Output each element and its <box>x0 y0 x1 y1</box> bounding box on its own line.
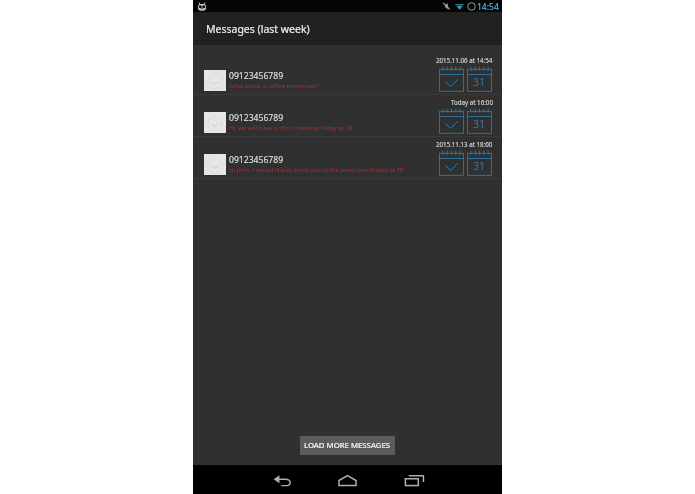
button[interactable]: Mark as done <box>439 106 464 134</box>
button[interactable]: Open calendar <box>467 64 492 92</box>
staticText: 2015.11.06 at 14:54 <box>436 56 493 64</box>
button[interactable]: LOAD MORE MESSAGES <box>300 436 395 455</box>
staticText: Hi, we will have a short meeting Today a… <box>229 124 353 132</box>
button[interactable]: 2015.11.06 at 14:54 <box>193 53 502 94</box>
staticText: 2015.11.13 at 18:00 <box>436 140 493 148</box>
button[interactable]: Recent apps <box>401 467 427 493</box>
staticText: 31 <box>473 75 486 89</box>
button[interactable]: Home <box>334 467 360 493</box>
staticText: 09123456789 <box>229 70 284 82</box>
button[interactable]: Mark as done <box>439 64 464 92</box>
button[interactable]: Today at 16:00 <box>193 95 502 136</box>
button[interactable]: 2015.11.13 at 18:00 <box>193 137 502 178</box>
staticText: what about a coffee tomorrow? <box>229 82 318 90</box>
staticText: Hi John, I would like to invite you to t… <box>229 166 404 174</box>
staticText: LOAD MORE MESSAGES <box>304 440 391 451</box>
staticText: 31 <box>473 117 486 131</box>
staticText: Today at 16:00 <box>451 98 493 106</box>
staticText: Messages (last week) <box>206 22 310 36</box>
staticText: 09123456789 <box>229 154 284 166</box>
button[interactable]: Back <box>269 467 295 493</box>
button[interactable]: Open calendar <box>467 148 492 176</box>
staticText: 14:54 <box>477 1 499 13</box>
staticText: 09123456789 <box>229 112 284 124</box>
button[interactable]: Mark as done <box>439 148 464 176</box>
button[interactable]: Open calendar <box>467 106 492 134</box>
staticText: 31 <box>473 159 486 173</box>
